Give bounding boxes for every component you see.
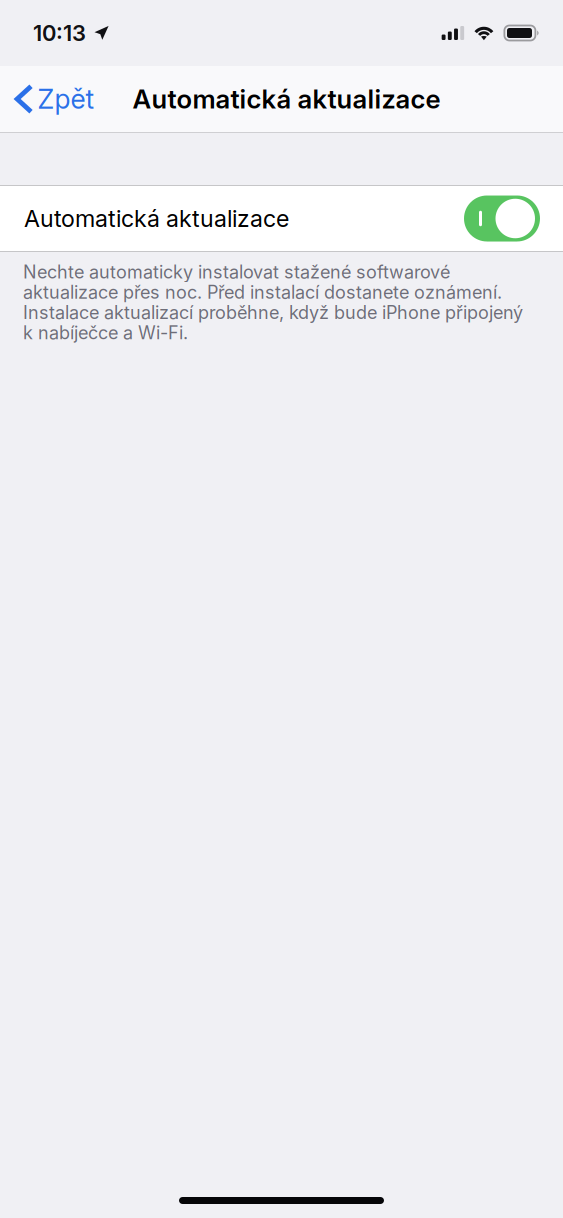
staticText: Nechte automaticky instalovat stažené so…: [23, 261, 523, 344]
staticText: 10:13: [33, 20, 86, 46]
staticText: Zpět: [37, 83, 94, 115]
staticText: Automatická aktualizace: [24, 204, 289, 233]
button[interactable]: Automatická aktualizace: [0, 186, 563, 251]
staticText: Automatická aktualizace: [132, 83, 440, 115]
button[interactable]: Zpět: [0, 68, 108, 130]
